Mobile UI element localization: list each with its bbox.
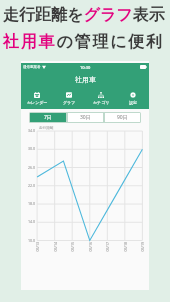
staticText: 14.0	[28, 219, 36, 224]
button[interactable]: 30日	[68, 113, 103, 122]
staticText: カレンダー	[27, 100, 48, 105]
staticText: 設定	[129, 100, 137, 105]
staticText: 05/18	[122, 241, 127, 251]
staticText: 05/17	[104, 241, 109, 251]
staticText: 10:30	[80, 65, 91, 70]
staticText: 走行距離	[39, 126, 54, 131]
staticText: 10.0	[28, 238, 36, 243]
button[interactable]: カテゴリ	[85, 88, 117, 108]
staticText: 05/16	[87, 241, 92, 251]
staticText: 05/14	[52, 241, 57, 251]
staticText: 30日	[80, 114, 91, 121]
button[interactable]: グラフ	[53, 88, 85, 108]
staticText: 社用車	[75, 75, 96, 84]
staticText: グラフ	[63, 100, 76, 105]
staticText: 社用車の管理に便利	[3, 32, 164, 52]
staticText: 18.0	[28, 201, 36, 206]
staticText: 90日	[117, 114, 128, 121]
staticText: カテゴリ	[93, 100, 110, 105]
staticText: 26.0	[28, 165, 36, 170]
staticText: 通信事業者	[23, 65, 41, 69]
staticText: 05/19	[139, 241, 144, 251]
button[interactable]: 7日	[30, 113, 66, 122]
staticText: 30.0	[28, 146, 36, 151]
staticText: 22.0	[28, 183, 36, 188]
staticText: 34.0	[28, 128, 36, 133]
staticText: 走行距離をグラフ表示	[3, 5, 165, 25]
button[interactable]: カレンダー	[21, 88, 53, 108]
button[interactable]: 90日	[105, 113, 140, 122]
button[interactable]: 設定	[117, 88, 149, 108]
staticText: 05/15	[69, 241, 74, 251]
staticText: 7日	[44, 114, 52, 121]
staticText: 05/13	[34, 241, 39, 251]
